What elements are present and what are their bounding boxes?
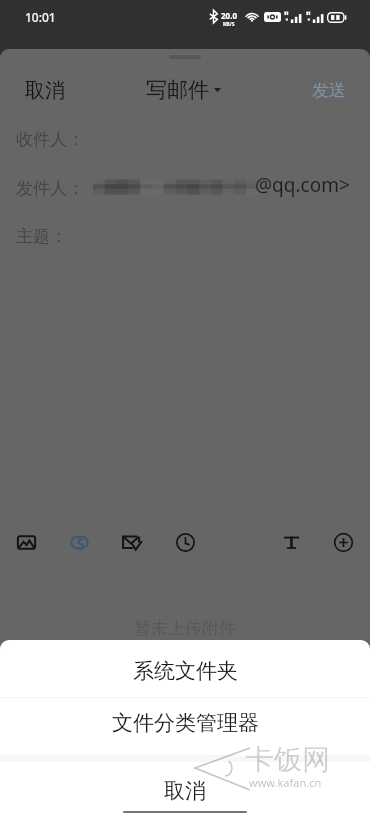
staticText: 系统文件夹 [133,658,238,684]
staticText: 暂未上传附件 [134,618,236,639]
button[interactable]: Insert image [4,522,48,562]
staticText: 10:01 [25,9,56,25]
staticText: www.kafan.cn [249,775,322,790]
staticText: 取消 [25,78,65,103]
staticText: 卡饭网 [246,742,330,777]
staticText: 写邮件 [146,77,209,103]
button[interactable]: 取消 [0,68,81,113]
staticText: 主题： [16,226,67,247]
staticText: 发送 [312,80,346,101]
button[interactable]: Text format [269,522,313,562]
button[interactable]: 发送 [296,70,370,111]
staticText: KB/S [223,21,235,28]
staticText: 取消 [164,778,206,804]
button[interactable]: 文件分类管理器 [0,695,370,751]
button[interactable]: More options [321,522,365,562]
staticText: 文件分类管理器 [112,710,259,736]
staticText: 发件人： [16,178,84,199]
button[interactable]: Schedule send [163,522,207,562]
staticText: @qq.com> [255,172,350,198]
staticText: 20.0 [221,10,237,21]
button[interactable]: Attach link [57,522,101,562]
button[interactable]: 系统文件夹 [0,643,370,699]
button[interactable]: 写邮件 [140,69,227,111]
button[interactable]: 取消 [0,763,370,819]
button[interactable]: Read receipt [109,522,153,562]
staticText: 收件人： [16,129,84,150]
